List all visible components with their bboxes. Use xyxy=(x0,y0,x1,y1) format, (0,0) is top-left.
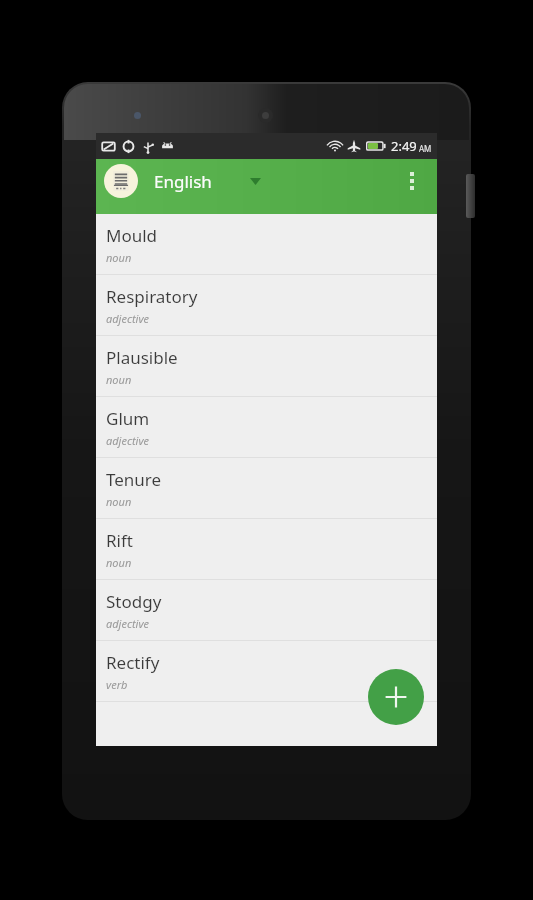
button[interactable]: English xyxy=(152,164,263,199)
button[interactable]: Add word xyxy=(368,669,424,725)
button[interactable]: Stodgy xyxy=(96,580,437,640)
button[interactable]: More options xyxy=(395,159,429,203)
staticText: Rift xyxy=(106,529,133,552)
button[interactable]: Plausible xyxy=(96,336,437,396)
staticText: adjective xyxy=(106,616,150,631)
staticText: noun xyxy=(106,250,132,265)
staticText: English xyxy=(154,170,212,193)
staticText: Glum xyxy=(106,407,150,430)
staticText: Rectify xyxy=(106,651,160,674)
staticText: verb xyxy=(106,677,128,692)
staticText: 2:49 xyxy=(391,137,417,155)
staticText: Respiratory xyxy=(106,285,198,308)
staticText: noun xyxy=(106,494,132,509)
staticText: adjective xyxy=(106,311,150,326)
staticText: noun xyxy=(106,372,132,387)
staticText: noun xyxy=(106,555,132,570)
button[interactable]: Mould xyxy=(96,214,437,274)
staticText: AM xyxy=(419,143,432,154)
staticText: Stodgy xyxy=(106,590,162,613)
staticText: Plausible xyxy=(106,346,178,369)
button[interactable]: Glum xyxy=(96,397,437,457)
button[interactable]: Rift xyxy=(96,519,437,579)
staticText: adjective xyxy=(106,433,150,448)
button[interactable]: Rectify xyxy=(96,641,437,701)
staticText: Tenure xyxy=(106,468,162,491)
staticText: Mould xyxy=(106,224,158,247)
button[interactable]: Tenure xyxy=(96,458,437,518)
button[interactable]: Respiratory xyxy=(96,275,437,335)
